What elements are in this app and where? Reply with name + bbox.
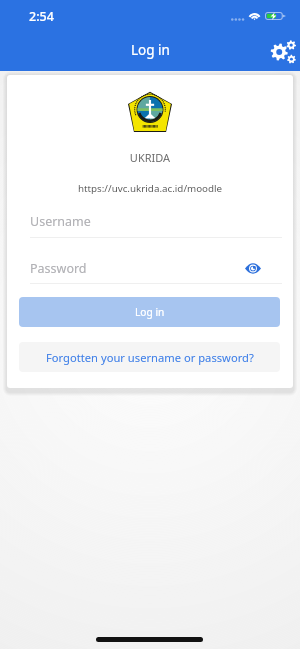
button[interactable]: Settings — [266, 35, 298, 67]
staticText: Log in — [131, 41, 170, 59]
staticText: https://uvc.ukrida.ac.id/moodle — [7, 182, 293, 195]
button[interactable]: Log in — [19, 297, 280, 327]
button[interactable]: Show password — [239, 255, 266, 282]
staticText: Log in — [135, 305, 165, 319]
staticText: UKRIDA — [7, 150, 293, 165]
button[interactable]: Forgotten your username or password? — [19, 342, 280, 372]
staticText: Username — [30, 213, 91, 230]
staticText: Password — [30, 260, 87, 277]
staticText: Forgotten your username or password? — [46, 350, 254, 365]
staticText: 2:54 — [29, 8, 54, 25]
